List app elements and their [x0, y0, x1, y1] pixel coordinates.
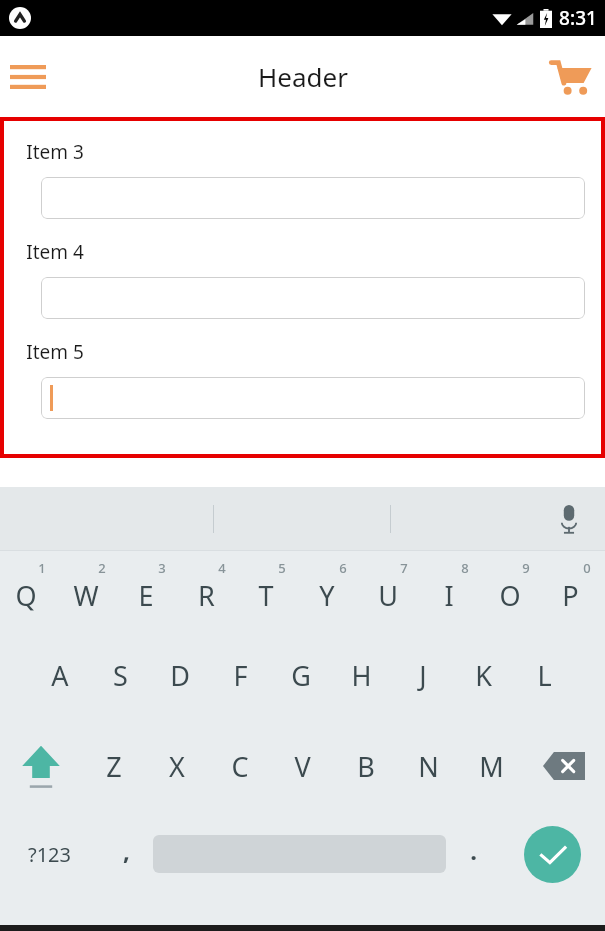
staticText: I [444, 577, 454, 614]
staticText: D [170, 657, 190, 694]
staticText: B [357, 748, 375, 785]
staticText: O [499, 577, 521, 614]
staticText: T [258, 577, 274, 614]
staticText: Q [15, 577, 37, 614]
button[interactable]: H [331, 629, 392, 721]
staticText: 5 [278, 559, 286, 577]
button[interactable]: O [483, 551, 544, 629]
button[interactable]: N [397, 721, 460, 811]
staticText: 8 [461, 559, 469, 577]
staticText: Z [106, 748, 122, 785]
staticText: R [198, 577, 215, 614]
button[interactable]: . [446, 811, 500, 897]
staticText: Y [319, 577, 335, 614]
button[interactable]: B [334, 721, 397, 811]
staticText: K [475, 657, 492, 694]
button[interactable]: I [422, 551, 483, 629]
staticText: 3 [158, 559, 166, 577]
staticText: W [73, 577, 99, 614]
button[interactable]: V [271, 721, 334, 811]
staticText: Item 4 [26, 239, 84, 265]
staticText: U [378, 577, 398, 614]
staticText: 7 [400, 559, 408, 577]
button[interactable]: R [180, 551, 240, 629]
button[interactable]: Shift [0, 721, 82, 811]
staticText: P [562, 577, 579, 614]
button[interactable]: M [460, 721, 523, 811]
staticText: 6 [339, 559, 347, 577]
button[interactable]: G [270, 629, 331, 721]
staticText: H [351, 657, 372, 694]
staticText: N [418, 748, 439, 785]
button[interactable]: T [240, 551, 300, 629]
staticText: L [537, 657, 552, 694]
staticText: , [123, 834, 130, 867]
staticText: S [113, 657, 128, 694]
staticText: E [138, 577, 154, 614]
button[interactable]: J [392, 629, 453, 721]
staticText: 9 [522, 559, 530, 577]
button[interactable]: , [99, 811, 153, 897]
button[interactable]: Voice input [547, 497, 591, 541]
button[interactable]: Z [82, 721, 145, 811]
button[interactable]: Shopping cart [543, 49, 599, 105]
button[interactable]: F [210, 629, 270, 721]
button[interactable]: W [60, 551, 120, 629]
button[interactable]: Enter [500, 811, 605, 897]
staticText: Item 5 [26, 339, 84, 365]
button[interactable]: Y [300, 551, 361, 629]
button[interactable]: X [145, 721, 208, 811]
button[interactable]: Space [153, 811, 446, 897]
button[interactable]: A [30, 629, 90, 721]
button[interactable]: Q [0, 551, 60, 629]
button[interactable]: ?123 [0, 811, 99, 897]
button[interactable]: D [150, 629, 210, 721]
staticText: 2 [98, 559, 106, 577]
button[interactable] [41, 377, 585, 419]
staticText: F [233, 657, 248, 694]
staticText: 0 [583, 559, 591, 577]
staticText: 1 [38, 559, 46, 577]
button[interactable]: E [120, 551, 180, 629]
staticText: Header [258, 59, 348, 94]
button[interactable] [41, 277, 585, 319]
staticText: . [470, 834, 477, 867]
button[interactable] [41, 177, 585, 219]
button[interactable]: U [361, 551, 422, 629]
button[interactable]: C [208, 721, 271, 811]
staticText: 4 [218, 559, 226, 577]
staticText: J [419, 657, 427, 694]
staticText: G [291, 657, 311, 694]
button[interactable]: Backspace [523, 721, 605, 811]
button[interactable]: Open navigation menu [0, 49, 56, 105]
button[interactable]: P [544, 551, 605, 629]
button[interactable]: S [90, 629, 150, 721]
staticText: X [169, 748, 185, 785]
staticText: M [479, 748, 504, 785]
button[interactable]: K [453, 629, 514, 721]
staticText: C [231, 748, 249, 785]
staticText: V [294, 748, 311, 785]
staticText: ?123 [28, 841, 71, 868]
staticText: Item 3 [26, 139, 84, 165]
button[interactable]: L [514, 629, 575, 721]
staticText: 8:31 [559, 5, 597, 31]
staticText: A [51, 657, 69, 694]
